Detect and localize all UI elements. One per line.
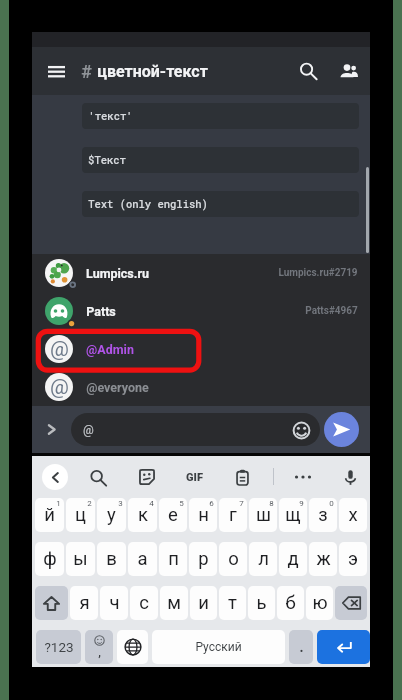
button[interactable]: е: [159, 498, 187, 532]
staticText: ь: [256, 592, 267, 614]
staticText: 7: [239, 499, 244, 508]
button[interactable]: о: [219, 542, 247, 576]
button[interactable]: я: [70, 586, 98, 620]
button[interactable]: @: [71, 413, 320, 446]
staticText: й: [44, 504, 55, 526]
button[interactable]: 'текст': [82, 103, 359, 129]
staticText: х: [348, 504, 358, 526]
staticText: ю: [312, 592, 328, 614]
staticText: ж: [316, 548, 331, 570]
staticText: .: [299, 639, 304, 655]
button[interactable]: й: [35, 498, 64, 532]
staticText: р: [198, 548, 209, 570]
button[interactable]: г: [219, 498, 247, 532]
button[interactable]: б: [277, 586, 304, 620]
staticText: щ: [285, 504, 301, 526]
button[interactable]: Stickers: [132, 456, 162, 498]
button[interactable]: GIF: [179, 456, 209, 498]
staticText: а: [137, 548, 148, 570]
staticText: д: [287, 548, 299, 570]
button[interactable]: ш: [249, 498, 277, 532]
staticText: ,: [98, 646, 101, 659]
staticText: г: [229, 504, 237, 526]
button[interactable]: Enter: [317, 630, 370, 664]
button[interactable]: Русский: [152, 630, 285, 664]
button[interactable]: л: [249, 542, 277, 576]
button[interactable]: Emoji and comma: [85, 630, 113, 664]
button[interactable]: Send message: [324, 412, 359, 447]
button[interactable]: к: [128, 498, 157, 532]
button[interactable]: р: [189, 542, 217, 576]
staticText: GIF: [186, 471, 203, 484]
staticText: Patts: [86, 304, 116, 319]
staticText: я: [79, 592, 90, 614]
staticText: 'текст': [88, 109, 133, 123]
button[interactable]: т: [219, 586, 246, 620]
staticText: з: [318, 504, 328, 526]
button[interactable]: д: [279, 542, 307, 576]
button[interactable]: ч: [100, 586, 128, 620]
button[interactable]: Patts: [32, 292, 370, 330]
button[interactable]: #: [81, 47, 208, 95]
button[interactable]: Lumpics.ru: [32, 254, 370, 292]
button[interactable]: ь: [248, 586, 275, 620]
button[interactable]: Voice input: [335, 456, 365, 498]
button[interactable]: п: [159, 542, 187, 576]
button[interactable]: с: [130, 586, 158, 620]
staticText: Patts#4967: [305, 305, 358, 317]
staticText: ы: [73, 548, 88, 570]
staticText: ц: [75, 504, 86, 526]
button[interactable]: Open channel drawer: [40, 47, 73, 95]
button[interactable]: Text (only english): [82, 191, 359, 217]
button[interactable]: в: [97, 542, 126, 576]
button[interactable]: ж: [309, 542, 337, 576]
staticText: в: [106, 548, 117, 570]
button[interactable]: у: [97, 498, 126, 532]
button[interactable]: $Текст: [82, 147, 359, 173]
button[interactable]: з: [309, 498, 337, 532]
staticText: @: [50, 337, 69, 362]
button[interactable]: Search emoji: [82, 456, 112, 498]
button[interactable]: Show actions: [32, 406, 71, 453]
staticText: @: [83, 423, 94, 437]
button[interactable]: э: [339, 542, 367, 576]
button[interactable]: а: [128, 542, 157, 576]
button[interactable]: ю: [306, 586, 333, 620]
staticText: э: [348, 548, 358, 570]
button[interactable]: Emoji: [289, 418, 313, 442]
button[interactable]: Clipboard: [227, 456, 257, 498]
button[interactable]: @: [32, 368, 370, 406]
button[interactable]: Shift: [35, 586, 68, 620]
button[interactable]: ц: [66, 498, 95, 532]
staticText: цветной-текст: [97, 62, 208, 81]
button[interactable]: @: [32, 330, 370, 368]
staticText: $Текст: [88, 153, 126, 167]
staticText: Text (only english): [88, 197, 208, 211]
staticText: к: [138, 504, 148, 526]
button[interactable]: ф: [35, 542, 64, 576]
button[interactable]: More options: [288, 456, 318, 498]
button[interactable]: Search: [288, 47, 328, 95]
staticText: м: [167, 592, 181, 614]
staticText: у: [107, 504, 116, 526]
staticText: 5: [179, 499, 184, 508]
button[interactable]: х: [339, 498, 367, 532]
button[interactable]: ?123: [36, 630, 81, 664]
button[interactable]: Members: [328, 47, 368, 95]
staticText: о: [228, 548, 239, 570]
staticText: и: [198, 592, 209, 614]
button[interactable]: ы: [66, 542, 95, 576]
button[interactable]: н: [189, 498, 217, 532]
staticText: 0: [329, 499, 334, 508]
staticText: 1: [56, 499, 61, 508]
staticText: л: [258, 548, 269, 570]
button[interactable]: Change keyboard language: [117, 630, 148, 664]
button[interactable]: Back: [42, 464, 68, 490]
button[interactable]: .: [289, 630, 313, 664]
button[interactable]: щ: [279, 498, 307, 532]
button[interactable]: м: [160, 586, 188, 620]
button[interactable]: и: [190, 586, 217, 620]
button[interactable]: Backspace: [335, 586, 367, 620]
staticText: 4: [149, 499, 154, 508]
staticText: ч: [109, 592, 120, 614]
